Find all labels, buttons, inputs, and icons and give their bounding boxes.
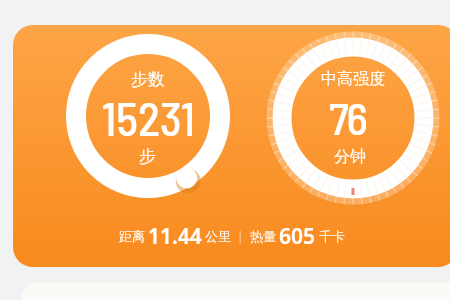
staticText: 步数: [131, 69, 165, 90]
staticText: 中高强度: [321, 69, 385, 89]
staticText: 11.44: [148, 222, 202, 250]
staticText: |: [237, 228, 244, 244]
button[interactable]: [66, 34, 230, 198]
staticText: 分钟: [334, 147, 366, 167]
staticText: 千卡: [319, 228, 345, 244]
button[interactable]: [13, 25, 450, 267]
staticText: 15231: [102, 90, 195, 140]
staticText: 步: [139, 146, 156, 167]
staticText: 热量: [250, 228, 276, 244]
staticText: 76: [329, 90, 366, 140]
staticText: 距离: [119, 228, 145, 244]
staticText: 605: [279, 222, 316, 250]
button[interactable]: [266, 31, 440, 205]
staticText: 公里: [205, 228, 231, 244]
